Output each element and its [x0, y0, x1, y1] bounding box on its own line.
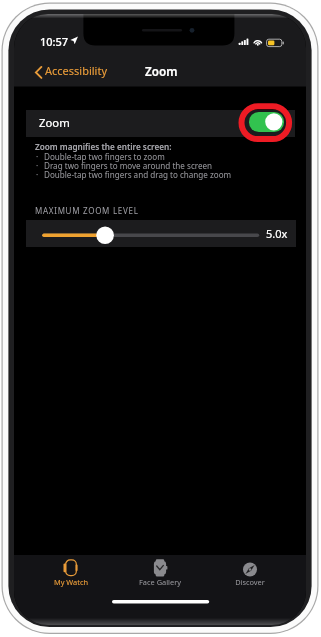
staticText: Zoom: [145, 63, 178, 79]
staticText: ·: [36, 160, 39, 171]
staticText: ·: [36, 151, 39, 162]
staticText: 5.0x: [266, 226, 288, 241]
staticText: Drag two fingers to move around the scre…: [44, 160, 213, 171]
button[interactable]: Discover: [205, 555, 295, 591]
button[interactable]: Accessibility: [30, 61, 134, 87]
staticText: Zoom: [39, 115, 70, 130]
staticText: Double-tap two fingers and drag to chang…: [44, 169, 232, 180]
staticText: Discover: [205, 577, 295, 587]
staticText: 10:57: [40, 34, 69, 49]
button[interactable]: Face Gallery: [115, 555, 205, 591]
button[interactable]: Zoom toggle, on: [249, 112, 284, 132]
staticText: Zoom magnifies the entire screen:: [35, 141, 172, 152]
staticText: Accessibility: [45, 63, 108, 78]
staticText: Face Gallery: [115, 577, 205, 587]
staticText: My Watch: [26, 577, 116, 587]
staticText: ·: [36, 169, 39, 180]
staticText: MAXIMUM ZOOM LEVEL: [35, 205, 139, 216]
button[interactable]: My Watch: [26, 555, 116, 591]
staticText: Double-tap two fingers to zoom: [44, 151, 165, 162]
button[interactable]: Zoom: [26, 110, 295, 137]
button[interactable]: Maximum zoom level: [26, 220, 296, 247]
